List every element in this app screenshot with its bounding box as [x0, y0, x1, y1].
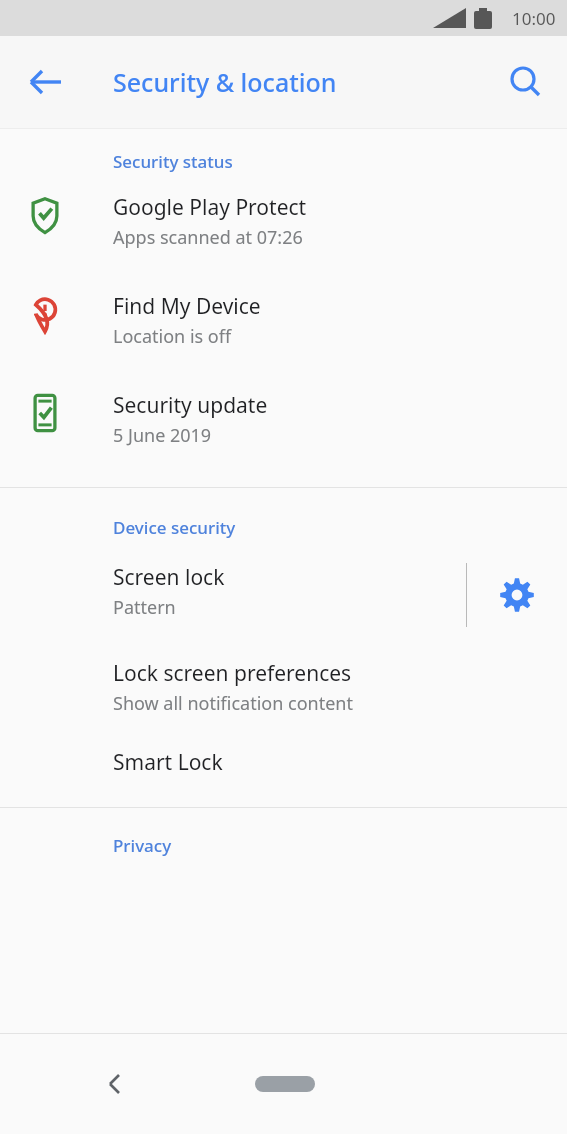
button[interactable]: Find My Device: [0, 292, 567, 354]
staticText: Google Play Protect: [113, 193, 307, 222]
staticText: Lock screen preferences: [113, 659, 352, 688]
staticText: Screen lock: [113, 563, 225, 592]
staticText: Security & location: [113, 65, 337, 99]
button[interactable]: Search: [497, 54, 553, 110]
button[interactable]: Back: [18, 54, 74, 110]
button[interactable]: Home: [255, 1076, 315, 1092]
staticText: 5 June 2019: [113, 423, 212, 448]
staticText: Security update: [113, 391, 268, 420]
staticText: 10:00: [512, 7, 556, 30]
button[interactable]: Smart Lock: [0, 748, 567, 777]
staticText: Apps scanned at 07:26: [113, 225, 303, 250]
button[interactable]: Back: [88, 1056, 144, 1112]
staticText: Find My Device: [113, 292, 261, 321]
button[interactable]: Security update: [0, 391, 567, 453]
button[interactable]: Screen lock settings: [467, 563, 567, 627]
button[interactable]: Screen lock: [0, 563, 466, 620]
staticText: Show all notification content: [113, 691, 353, 716]
staticText: Smart Lock: [113, 748, 223, 777]
staticText: Location is off: [113, 324, 232, 349]
staticText: Pattern: [113, 595, 176, 620]
button[interactable]: Lock screen preferences: [0, 659, 567, 716]
staticText: Privacy: [113, 834, 172, 857]
staticText: Device security: [113, 516, 236, 539]
staticText: Security status: [113, 150, 233, 173]
button[interactable]: Google Play Protect: [0, 193, 567, 255]
